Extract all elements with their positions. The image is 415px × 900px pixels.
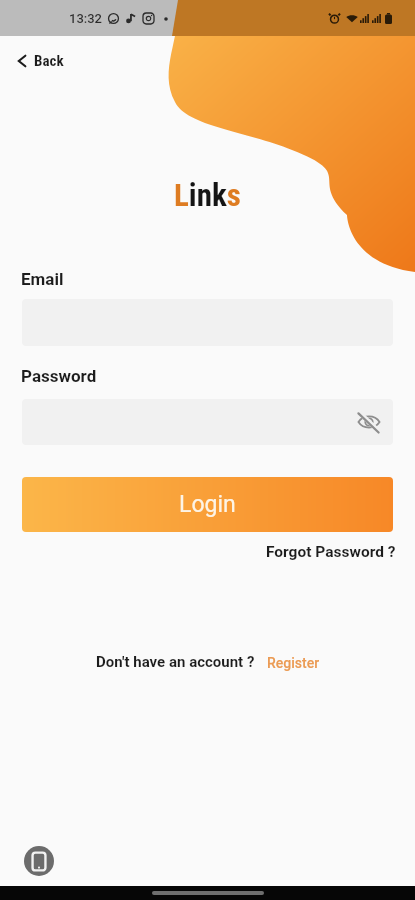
button[interactable]: Show password: [353, 406, 385, 438]
button[interactable]: Back: [0, 46, 415, 76]
button[interactable]: Register: [267, 655, 320, 671]
button[interactable]: Forgot Password ?: [266, 543, 415, 561]
staticText: Links: [174, 177, 241, 213]
staticText: Password: [21, 366, 97, 386]
staticText: Login: [179, 491, 236, 518]
button[interactable]: Show password: [22, 399, 393, 445]
button[interactable]: Login: [22, 477, 393, 532]
staticText: Email: [21, 269, 64, 289]
button[interactable]: Open on phone: [24, 846, 54, 876]
staticText: 13:32: [69, 11, 103, 26]
staticText: Back: [34, 52, 64, 70]
staticText: Don't have an account ?: [96, 653, 255, 671]
